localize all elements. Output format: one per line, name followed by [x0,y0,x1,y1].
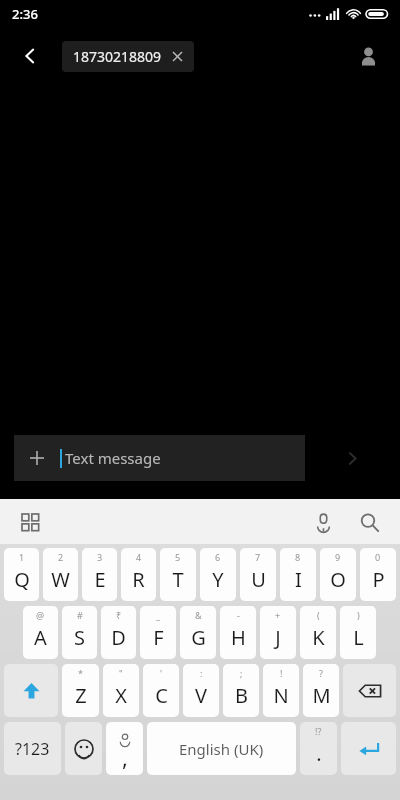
staticText: 3 [97,551,103,563]
staticText: ' [160,667,163,679]
button[interactable]: !? [300,722,337,775]
button[interactable]: ' [143,664,179,717]
staticText: 0 [375,551,381,563]
staticText: R [132,566,145,593]
button[interactable]: Emoji [65,722,102,775]
button[interactable]: + [260,606,296,659]
button[interactable]: Contact [346,34,390,78]
button[interactable]: # [62,606,97,659]
staticText: V [195,682,207,709]
staticText: I [295,566,302,593]
button[interactable]: Enter [341,722,396,775]
staticText: C [155,682,168,709]
button[interactable]: Backspace [343,664,396,717]
staticText: 7 [255,551,261,563]
button[interactable]: : [183,664,219,717]
staticText: N [273,682,289,709]
staticText: A [34,624,47,651]
staticText: 8 [295,551,301,563]
staticText: M [312,682,331,709]
staticText: X [115,682,127,709]
staticText: J [275,624,281,651]
staticText: 2:36 [12,5,38,23]
button[interactable]: ! [263,664,299,717]
button[interactable]: Comma [106,722,143,775]
staticText: 18730218809 [73,47,162,66]
button[interactable]: 8 [280,548,316,601]
staticText: 4 [136,551,142,563]
button[interactable]: 0 [360,548,396,601]
button[interactable]: 2 [43,548,78,601]
staticText: Z [75,682,87,709]
staticText: E [94,566,106,593]
button[interactable]: " [103,664,139,717]
staticText: + [275,609,281,621]
button[interactable]: Keyboard options [14,506,46,538]
staticText: S [74,624,85,651]
button[interactable]: _ [140,606,176,659]
staticText: ) [357,609,360,621]
staticText: ( [317,609,320,621]
button[interactable]: * [62,664,99,717]
staticText: Q [14,566,30,593]
staticText: ₹ [116,609,122,621]
staticText: " [119,667,123,679]
button[interactable]: 18730218809 [62,41,194,72]
staticText: 1 [19,551,25,563]
button[interactable]: @ [23,606,58,659]
staticText: - [237,609,240,621]
button[interactable]: & [180,606,216,659]
button[interactable]: ? [303,664,339,717]
staticText: G [191,624,206,651]
staticText: L [353,624,364,651]
staticText: F [153,624,164,651]
staticText: Text message [65,448,161,468]
button[interactable]: Space [147,722,296,775]
staticText: 6 [215,551,221,563]
staticText: * [78,667,83,679]
staticText: English (UK) [179,739,264,759]
button[interactable]: 9 [320,548,356,601]
staticText: 5 [175,551,181,563]
staticText: ; [240,667,243,679]
button[interactable]: - [220,606,256,659]
button[interactable]: Search [350,503,388,541]
staticText: @ [36,609,45,621]
button[interactable]: Shift [4,664,58,717]
staticText: O [330,566,346,593]
staticText: U [251,566,266,593]
button[interactable]: Voice input [304,503,342,541]
button[interactable]: ₹ [101,606,136,659]
staticText: K [312,624,325,651]
button[interactable]: Back [8,34,52,78]
button[interactable]: 5 [160,548,196,601]
staticText: !? [315,725,322,737]
button[interactable]: 1 [4,548,39,601]
staticText: 9 [335,551,341,563]
button[interactable]: Symbols [4,722,61,775]
button[interactable]: Text message [14,435,305,481]
button[interactable]: ; [223,664,259,717]
staticText: # [77,609,83,621]
staticText: : [200,667,203,679]
staticText: W [51,566,70,593]
staticText: ? [319,667,323,679]
staticText: ?123 [15,738,50,760]
staticText: H [231,624,246,651]
button[interactable]: 4 [121,548,156,601]
button[interactable]: 7 [240,548,276,601]
button[interactable]: ) [340,606,376,659]
staticText: D [111,624,126,651]
staticText: , [122,742,128,772]
button[interactable]: 3 [82,548,117,601]
button[interactable]: ( [300,606,336,659]
staticText: & [195,609,202,621]
button[interactable]: 6 [200,548,236,601]
button[interactable]: Send [305,435,400,481]
staticText: 2 [58,551,64,563]
staticText: B [235,682,248,709]
staticText: . [316,740,322,767]
staticText: ! [280,667,283,679]
staticText: T [172,566,184,593]
staticText: P [372,566,385,593]
